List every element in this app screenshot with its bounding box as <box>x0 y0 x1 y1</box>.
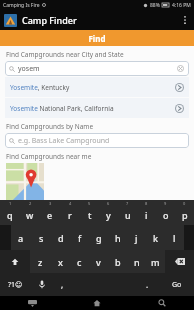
staticText: i <box>145 209 148 221</box>
staticText: yosem <box>18 64 40 74</box>
staticText: Camp Finder <box>22 14 77 26</box>
staticText: , <box>61 279 64 290</box>
staticText: Find <box>88 33 106 44</box>
button[interactable]: Find <box>0 30 194 46</box>
button[interactable]: b <box>108 250 127 273</box>
staticText: y <box>106 209 111 221</box>
staticText: o <box>163 209 169 221</box>
button[interactable]: v <box>89 250 108 273</box>
staticText: 8 <box>145 201 148 206</box>
staticText: 88% <box>150 2 160 9</box>
staticText: f <box>78 232 82 244</box>
button[interactable]: g <box>89 225 108 250</box>
button[interactable]: l <box>165 225 184 250</box>
button[interactable]: 8 <box>137 200 156 225</box>
staticText: r <box>68 209 72 221</box>
staticText: m <box>151 256 160 268</box>
staticText: 0 <box>183 201 186 206</box>
button[interactable]: Search <box>129 296 194 310</box>
staticText: 6 <box>107 201 110 206</box>
staticText: u <box>125 209 131 221</box>
staticText: Find Campgrounds by Name <box>6 122 94 131</box>
button[interactable]: Find campgrounds near me on map <box>6 163 44 200</box>
staticText: 5 <box>88 201 91 206</box>
button[interactable]: j <box>127 225 146 250</box>
button[interactable]: n <box>127 250 146 273</box>
staticText: n <box>134 256 140 268</box>
button[interactable]: Camp Finder icon <box>4 14 17 27</box>
staticText: k <box>153 232 159 244</box>
button[interactable]: s <box>31 225 51 250</box>
staticText: x <box>58 256 63 268</box>
button[interactable]: Clear text <box>176 64 185 73</box>
staticText: l <box>173 232 176 244</box>
button[interactable]: Home <box>64 296 129 310</box>
staticText: v <box>96 256 101 268</box>
staticText: z <box>38 256 43 268</box>
button[interactable]: Comma <box>52 273 73 296</box>
staticText: 1 <box>9 201 12 206</box>
button[interactable]: h <box>108 225 127 250</box>
button[interactable]: 7 <box>118 200 137 225</box>
button[interactable]: x <box>50 250 70 273</box>
button[interactable]: Period <box>136 273 159 296</box>
button[interactable]: 3 <box>40 200 60 225</box>
staticText: c <box>77 256 82 268</box>
button[interactable]: e.g. Bass Lake Campground <box>5 133 189 148</box>
staticText: Find Campgrounds near me <box>6 152 92 161</box>
button[interactable]: Yosemite, Kentucky <box>5 77 189 97</box>
button[interactable]: Yosemite National Park, California <box>5 98 189 118</box>
button[interactable]: d <box>51 225 70 250</box>
staticText: 2 <box>29 201 32 206</box>
staticText: t <box>88 209 92 221</box>
button[interactable]: 1 <box>0 200 20 225</box>
button[interactable]: m <box>146 250 165 273</box>
staticText: Yosemite, Kentucky <box>10 83 70 92</box>
button[interactable]: 0 <box>175 200 194 225</box>
button[interactable]: 6 <box>99 200 118 225</box>
staticText: p <box>182 209 188 221</box>
button[interactable]: 5 <box>80 200 99 225</box>
staticText: e.g. Bass Lake Campground <box>18 136 110 146</box>
staticText: q <box>7 209 13 221</box>
button[interactable]: c <box>70 250 89 273</box>
staticText: Camping Is Fire <box>3 2 40 9</box>
staticText: g <box>96 232 102 244</box>
staticText: w <box>26 209 34 221</box>
button[interactable]: Voice input <box>31 273 52 296</box>
button[interactable]: Symbols <box>0 273 31 296</box>
staticText: Find Campgrounds near City and State <box>6 50 124 59</box>
staticText: e <box>47 209 53 221</box>
staticText: Yosemite National Park, California <box>10 104 114 113</box>
staticText: b <box>115 256 121 268</box>
staticText: 4:16 PM <box>172 2 191 9</box>
button[interactable]: More options <box>180 10 190 30</box>
button[interactable]: yosem <box>5 61 189 76</box>
staticText: 4 <box>69 201 72 206</box>
button[interactable]: 9 <box>156 200 175 225</box>
staticText: j <box>135 232 138 244</box>
button[interactable]: f <box>70 225 89 250</box>
staticText: Go <box>172 280 182 290</box>
staticText: h <box>115 232 121 244</box>
button[interactable]: Backspace <box>165 250 194 273</box>
button[interactable]: Hide keyboard <box>0 296 64 310</box>
staticText: 9 <box>164 201 167 206</box>
staticText: 7 <box>126 201 129 206</box>
button[interactable]: a <box>11 225 31 250</box>
button[interactable]: 4 <box>60 200 80 225</box>
button[interactable]: z <box>30 250 50 273</box>
staticText: ?1☺ <box>8 280 23 290</box>
staticText: s <box>39 232 44 244</box>
staticText: 3 <box>49 201 52 206</box>
button[interactable]: 2 <box>20 200 40 225</box>
staticText: . <box>146 279 149 290</box>
button[interactable]: k <box>146 225 165 250</box>
button[interactable]: Shift <box>0 250 30 273</box>
button[interactable]: Go <box>159 273 194 296</box>
staticText: d <box>58 232 64 244</box>
staticText: a <box>18 232 24 244</box>
